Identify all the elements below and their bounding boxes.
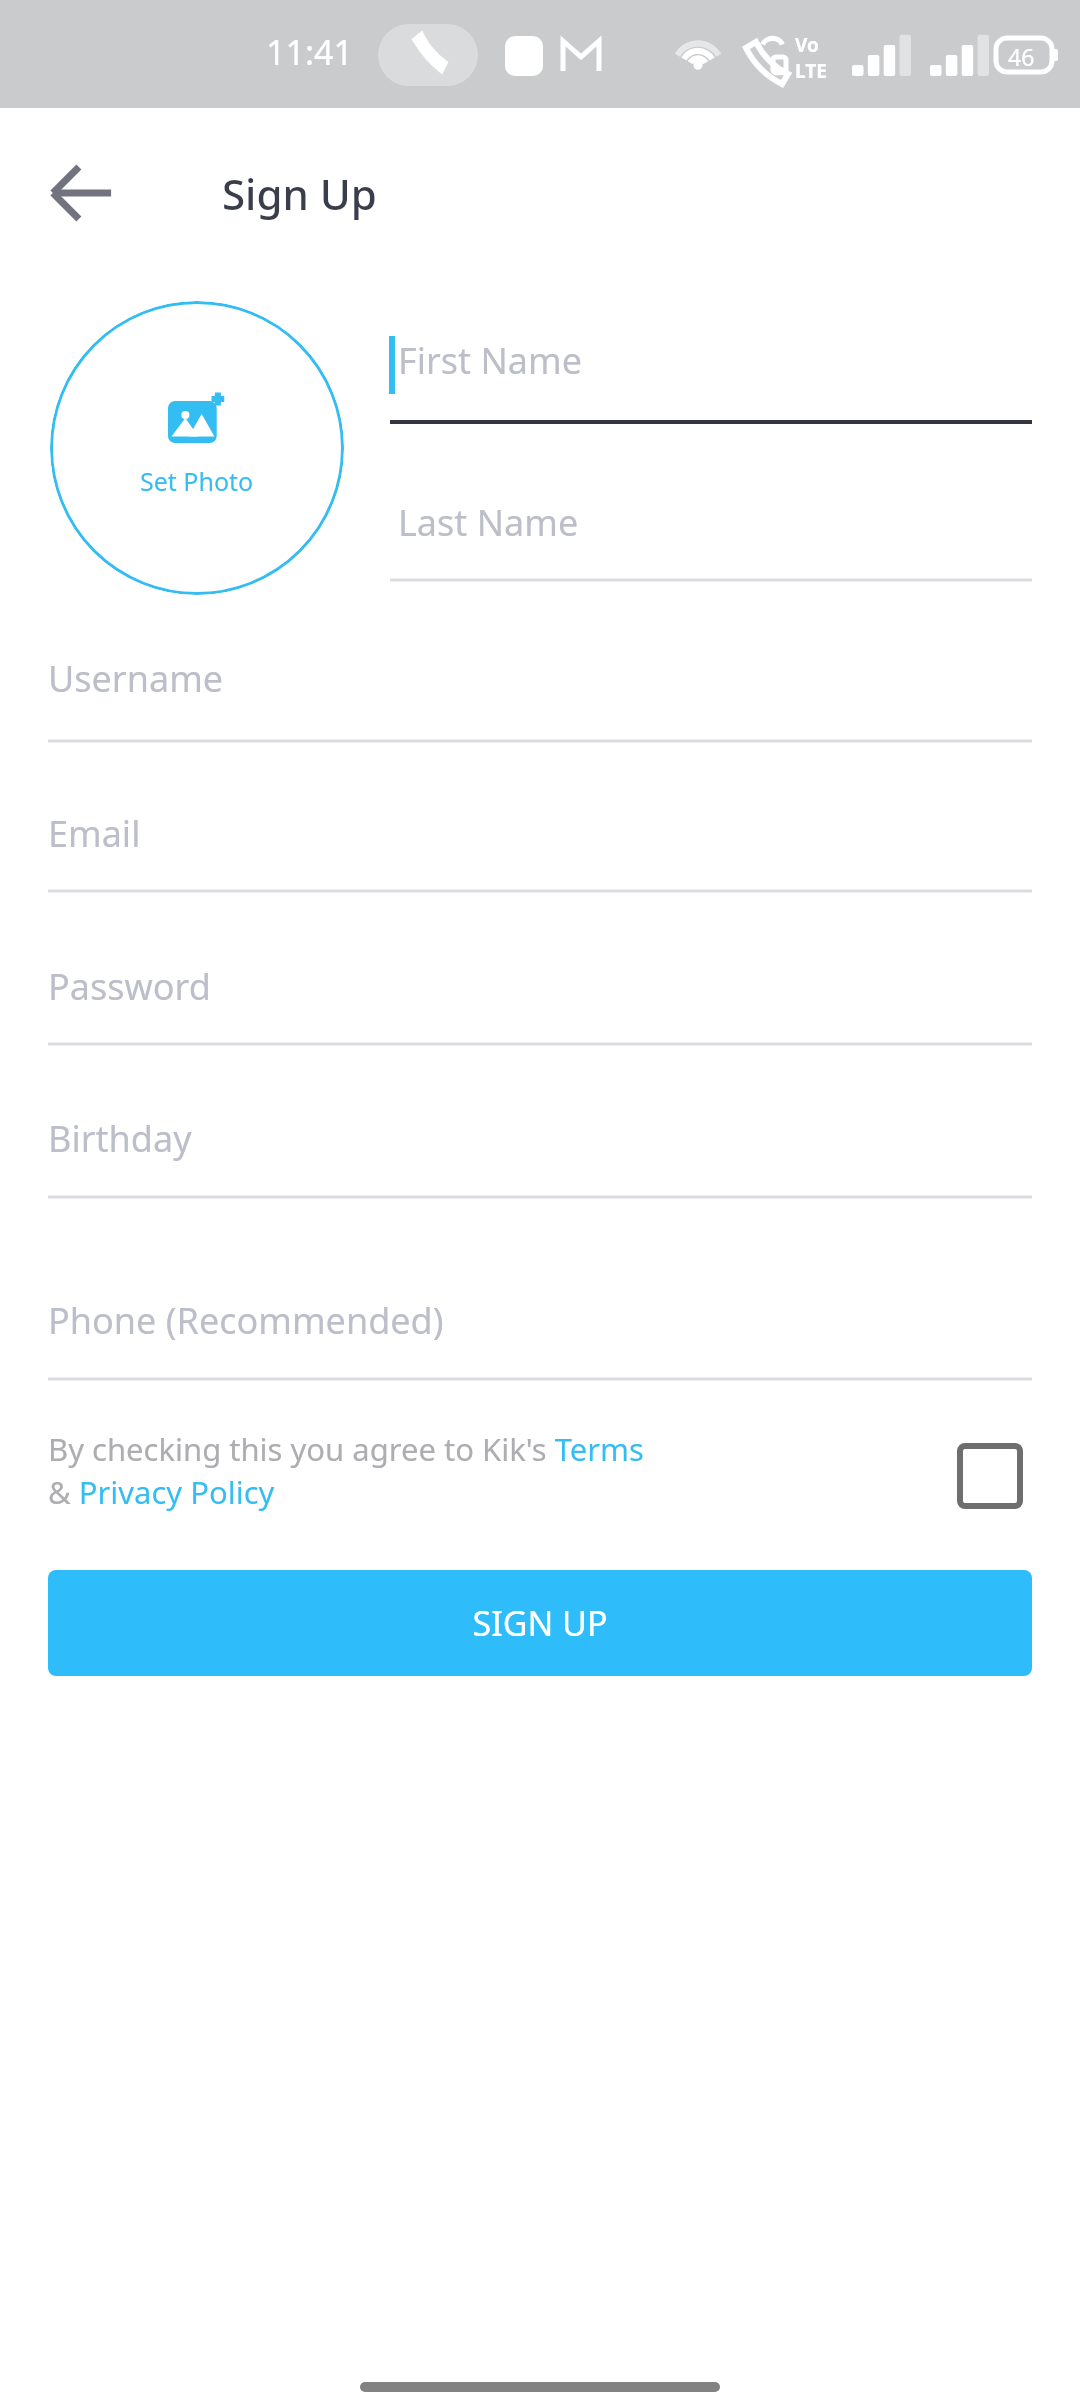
button[interactable]: Phone (Recommended) [48,1292,1032,1384]
button[interactable]: Last Name [390,490,1032,582]
staticText: LTE [795,58,827,84]
button[interactable]: First Name [390,330,1032,425]
button[interactable]: Birthday [48,1110,1032,1202]
button[interactable]: Agree to terms checkbox [948,1434,1032,1518]
button[interactable]: Email [48,805,1032,896]
button[interactable]: By checking this you agree to Kik's Term… [48,1428,644,1514]
staticText: Set Photo [140,464,254,498]
staticText: Sign Up [222,165,377,222]
staticText: 46 [1008,41,1035,72]
staticText: Username [48,654,224,703]
staticText: & Privacy Policy [48,1471,275,1513]
staticText: Password [48,962,211,1011]
staticText: Email [48,809,141,858]
staticText: First Name [398,336,582,385]
staticText: Last Name [398,498,579,547]
staticText: Phone (Recommended) [48,1296,444,1345]
button[interactable]: Username [48,650,1032,746]
staticText: SIGN UP [472,1600,608,1646]
button[interactable]: Back [30,141,134,245]
button[interactable]: Set Photo [50,301,344,595]
staticText: 11:41 [266,29,353,75]
staticText: Vo [795,32,819,58]
button[interactable]: Password [48,958,1032,1049]
staticText: By checking this you agree to Kik's Term… [48,1428,644,1470]
button[interactable]: SIGN UP [48,1570,1032,1676]
staticText: Birthday [48,1114,192,1163]
